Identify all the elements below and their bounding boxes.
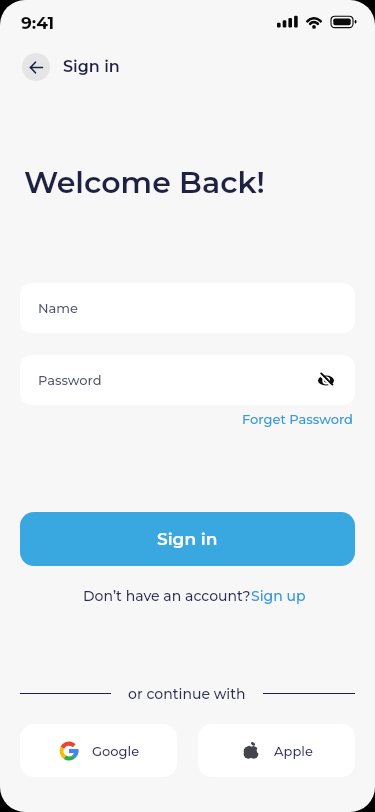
staticText: Apple <box>274 743 313 759</box>
button[interactable]: Name <box>20 283 355 333</box>
staticText: Sign in <box>157 529 218 550</box>
staticText: Name <box>38 300 79 316</box>
button[interactable]: Password <box>20 355 355 405</box>
staticText: Password <box>38 372 102 388</box>
staticText: Sign in <box>63 57 120 77</box>
button[interactable]: Sign up <box>251 587 306 604</box>
staticText: Don’t have an account? <box>83 587 251 604</box>
button[interactable]: Sign in <box>20 512 355 566</box>
button[interactable]: Google <box>20 724 177 777</box>
staticText: or continue with <box>128 685 246 702</box>
staticText: Google <box>92 743 140 759</box>
staticText: Sign up <box>251 587 306 604</box>
button[interactable]: Forget Password <box>242 411 353 427</box>
staticText: Welcome Back! <box>24 164 265 201</box>
staticText: 9:41 <box>21 13 55 34</box>
button[interactable]: Apple <box>198 724 355 777</box>
staticText: Forget Password <box>242 411 353 427</box>
button[interactable] <box>22 53 50 81</box>
